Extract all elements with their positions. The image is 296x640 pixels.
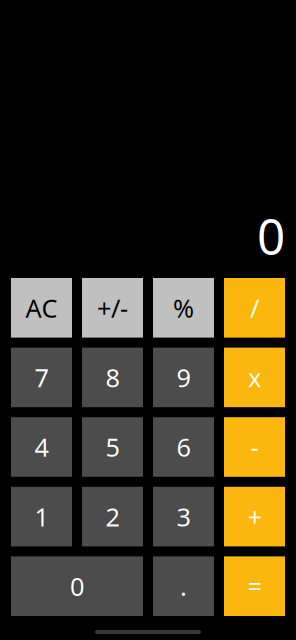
button[interactable]: 1 [11,487,72,546]
button[interactable]: - [224,417,285,477]
button[interactable]: = [224,556,285,616]
button[interactable]: + [224,487,285,546]
staticText: 7 [34,361,48,394]
staticText: 1 [34,500,48,533]
button[interactable]: 5 [82,417,143,477]
staticText: - [250,430,258,464]
staticText: / [250,291,259,325]
staticText: = [247,569,261,603]
staticText: 8 [105,361,119,394]
staticText: AC [25,291,57,325]
staticText: 6 [176,430,190,464]
button[interactable]: +/- [82,278,143,338]
staticText: 0 [70,569,84,603]
button[interactable]: 0 [11,556,143,616]
button[interactable]: 4 [11,417,72,477]
staticText: 2 [105,500,119,533]
staticText: . [180,569,187,603]
button[interactable]: % [153,278,214,338]
staticText: 3 [176,500,190,533]
button[interactable]: 8 [82,348,143,407]
staticText: 4 [34,430,48,464]
button[interactable]: 7 [11,348,72,407]
staticText: x [248,361,261,394]
button[interactable]: 6 [153,417,214,477]
staticText: % [173,291,194,325]
button[interactable]: / [224,278,285,338]
staticText: +/- [97,291,128,325]
button[interactable]: . [153,556,214,616]
button[interactable]: AC [11,278,72,338]
staticText: 5 [105,430,119,464]
button[interactable]: 3 [153,487,214,546]
staticText: 9 [176,361,190,394]
staticText: + [247,500,261,533]
button[interactable]: 9 [153,348,214,407]
button[interactable]: x [224,348,285,407]
button[interactable]: 2 [82,487,143,546]
staticText: 0 [257,202,285,268]
